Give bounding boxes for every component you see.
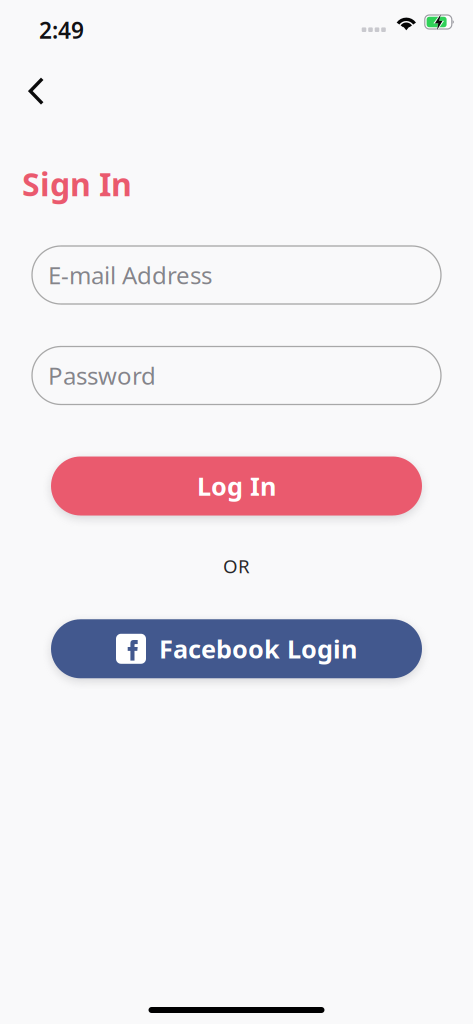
staticText: 2:49 (39, 15, 84, 45)
staticText: Password (48, 360, 156, 391)
staticText: Log In (197, 469, 276, 503)
staticText: Sign In (22, 162, 132, 205)
staticText: Facebook Login (159, 632, 357, 666)
button[interactable]: Facebook Login (51, 619, 422, 678)
button[interactable]: Password (32, 346, 441, 404)
staticText: E-mail Address (48, 259, 212, 291)
button[interactable]: Back (0, 67, 60, 114)
staticText: OR (223, 553, 250, 578)
button[interactable]: E-mail Address (32, 246, 441, 304)
button[interactable]: Log In (51, 456, 422, 515)
